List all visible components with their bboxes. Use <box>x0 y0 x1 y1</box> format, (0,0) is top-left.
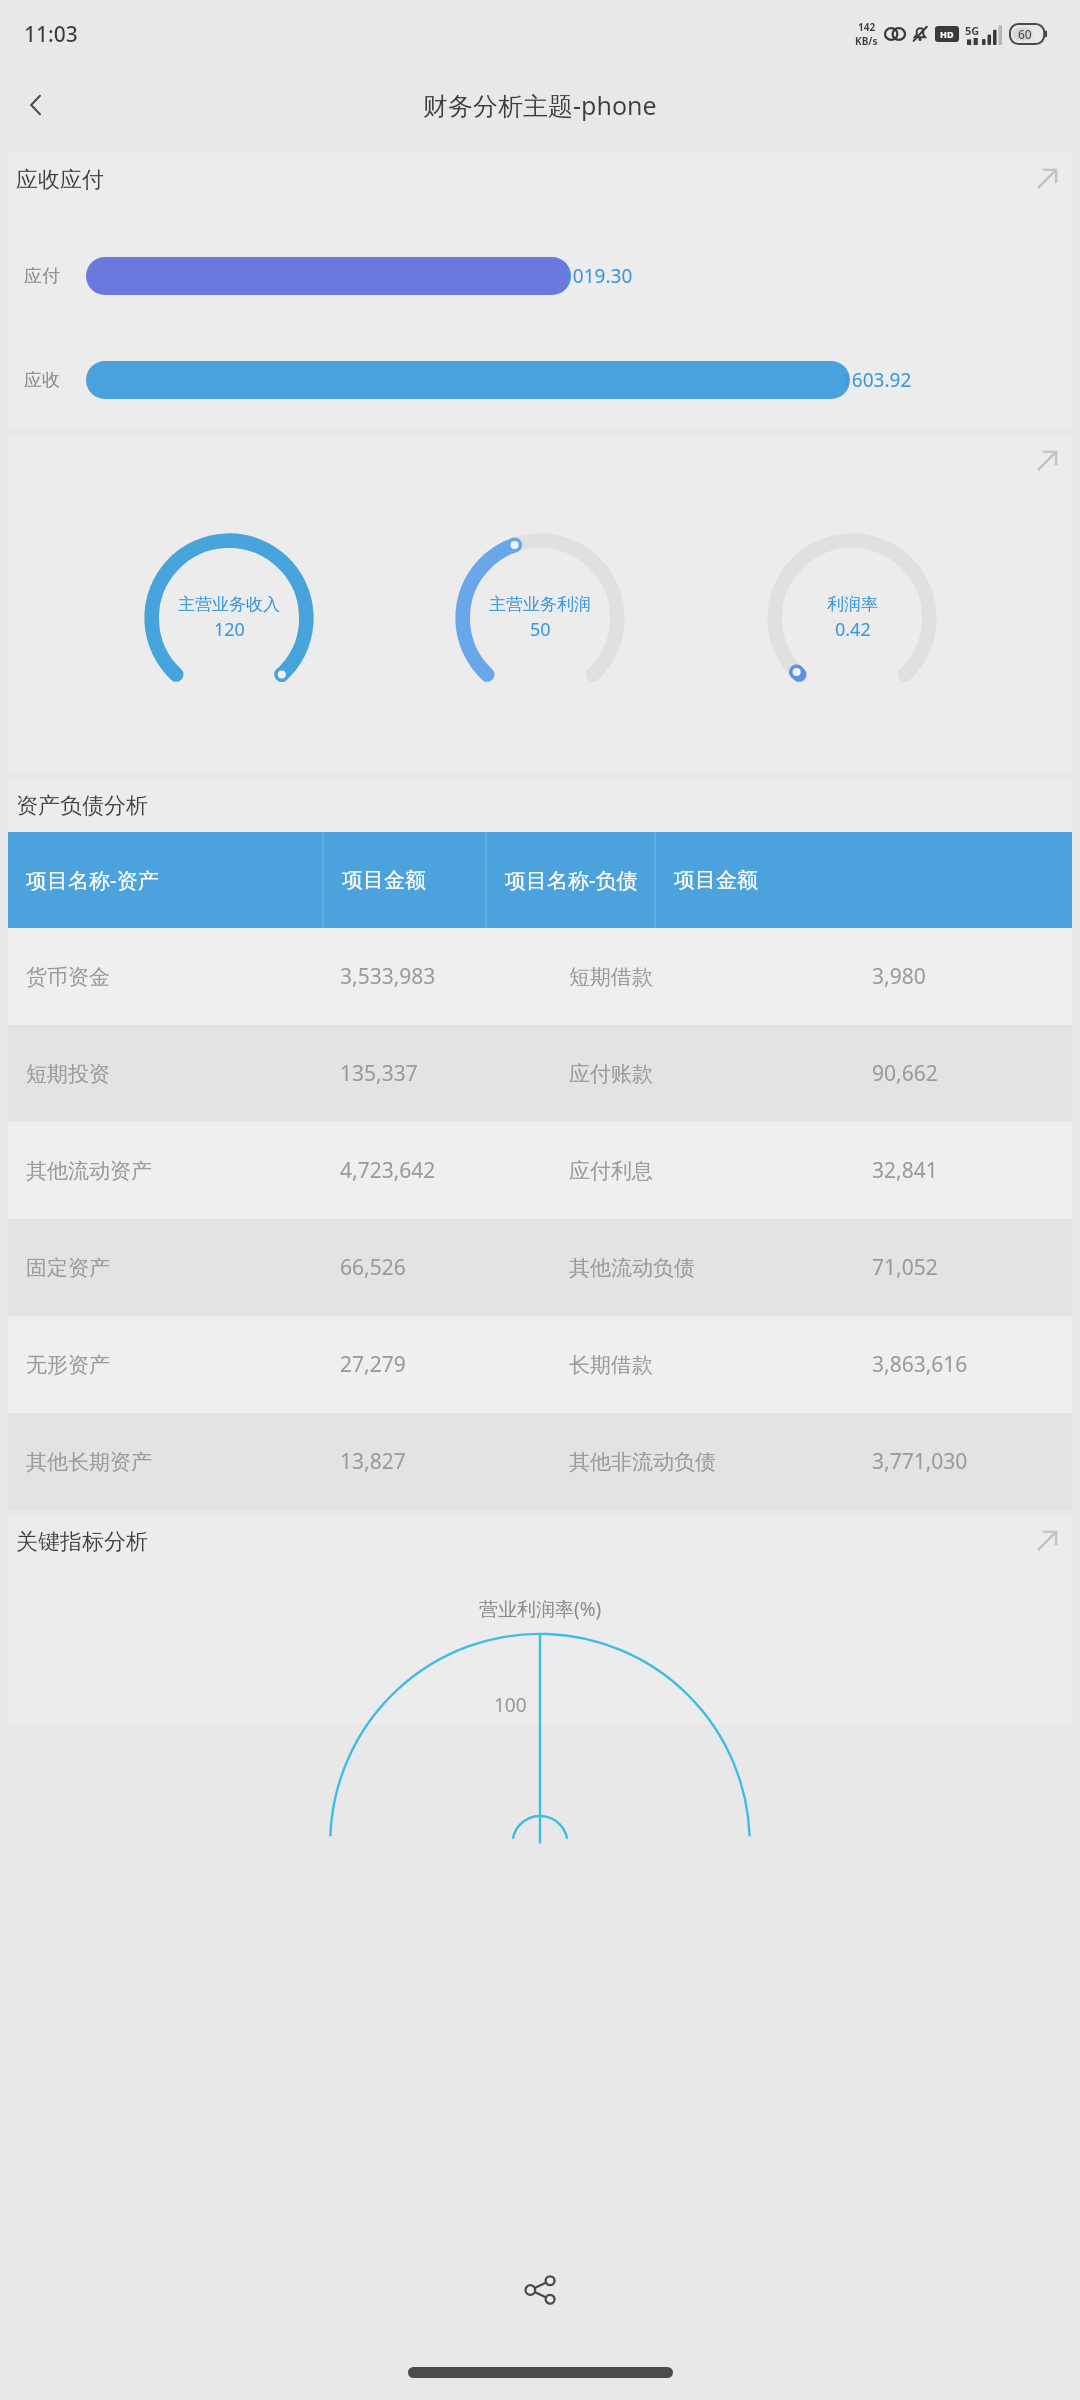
staticText: 应收应付 <box>16 166 104 194</box>
staticText: 100 <box>494 1692 527 1718</box>
staticText: 90,662 <box>872 1059 938 1088</box>
staticText: 1603.92 <box>841 367 912 393</box>
button[interactable]: Share <box>508 2258 572 2322</box>
staticText: 60 <box>1018 26 1032 42</box>
button[interactable]: 短期投资 <box>8 1025 1072 1122</box>
staticText: HD <box>940 28 954 40</box>
staticText: 0.42 <box>835 617 871 642</box>
staticText: 财务分析主题-phone <box>423 88 657 122</box>
staticText: 应付 <box>24 265 86 288</box>
staticText: 项目金额 <box>674 867 758 893</box>
staticText: 项目金额 <box>342 867 426 893</box>
button[interactable]: 固定资产 <box>8 1219 1072 1316</box>
staticText: 其他长期资产 <box>26 1449 152 1475</box>
staticText: 4,723,642 <box>340 1156 436 1185</box>
staticText: 项目名称-负债 <box>505 866 638 895</box>
button[interactable]: Expand <box>1024 438 1070 484</box>
staticText: 66,526 <box>340 1253 406 1282</box>
staticText: 主营业务利润 <box>489 594 591 615</box>
button[interactable]: 货币资金 <box>8 928 1072 1025</box>
staticText: 3,533,983 <box>340 962 436 991</box>
button[interactable]: 其他长期资产 <box>8 1413 1072 1510</box>
button[interactable]: 无形资产 <box>8 1316 1072 1413</box>
button[interactable]: Expand <box>1024 1518 1070 1564</box>
staticText: 其他流动资产 <box>26 1158 152 1184</box>
staticText: 营业利润率(%) <box>479 1596 602 1622</box>
button[interactable]: Back <box>8 77 64 133</box>
button[interactable]: Expand <box>1024 156 1070 202</box>
staticText: 固定资产 <box>26 1255 110 1281</box>
staticText: 135,337 <box>340 1059 418 1088</box>
button[interactable]: 应收应付 <box>8 152 1072 430</box>
staticText: KB/s <box>855 34 878 48</box>
staticText: 应收 <box>24 369 86 392</box>
staticText: 13,827 <box>340 1447 406 1476</box>
staticText: 1019.30 <box>562 263 633 289</box>
staticText: 应付利息 <box>569 1158 653 1184</box>
button[interactable]: Expand <box>8 434 1072 774</box>
staticText: 应付账款 <box>569 1061 653 1087</box>
staticText: 主营业务收入 <box>178 594 280 615</box>
staticText: 资产负债分析 <box>16 792 148 820</box>
staticText: 其他非流动负债 <box>569 1449 716 1475</box>
staticText: 120 <box>214 617 245 642</box>
staticText: 5G <box>965 23 980 38</box>
staticText: 长期借款 <box>569 1352 653 1378</box>
staticText: 项目名称-资产 <box>26 866 159 895</box>
staticText: 32,841 <box>872 1156 938 1185</box>
staticText: 短期投资 <box>26 1061 110 1087</box>
staticText: 关键指标分析 <box>16 1528 148 1556</box>
staticText: 50 <box>530 617 551 642</box>
staticText: 利润率 <box>827 594 878 615</box>
staticText: 3,863,616 <box>872 1350 968 1379</box>
staticText: 71,052 <box>872 1253 938 1282</box>
staticText: 3,980 <box>872 962 926 991</box>
staticText: 3,771,030 <box>872 1447 968 1476</box>
staticText: 27,279 <box>340 1350 406 1379</box>
button[interactable]: 其他流动资产 <box>8 1122 1072 1219</box>
staticText: 无形资产 <box>26 1352 110 1378</box>
staticText: 货币资金 <box>26 964 110 990</box>
staticText: 11:03 <box>24 20 78 49</box>
staticText: 其他流动负债 <box>569 1255 695 1281</box>
staticText: 142 <box>858 20 876 34</box>
staticText: 短期借款 <box>569 964 653 990</box>
button[interactable]: 关键指标分析 <box>8 1514 1072 1724</box>
